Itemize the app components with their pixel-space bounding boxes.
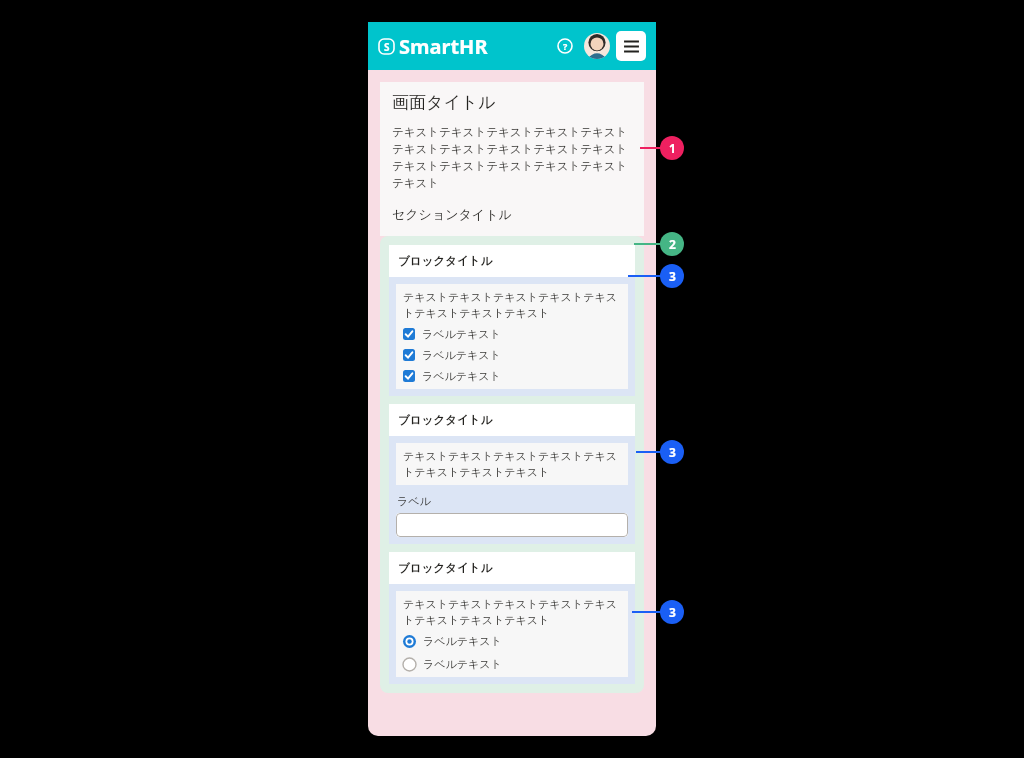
staticText: ラベルテキスト xyxy=(422,348,501,362)
button[interactable]: Annotation 3 xyxy=(660,600,684,624)
button[interactable]: Account xyxy=(584,33,610,59)
staticText: SmartHR xyxy=(399,33,488,60)
staticText: テキストテキストテキストテキストテキストテキストテキストテキスト xyxy=(403,449,621,479)
button[interactable]: Menu xyxy=(616,31,646,61)
staticText: 3 xyxy=(669,268,676,284)
staticText: 画面タイトル xyxy=(392,92,496,113)
button[interactable]: ラベルテキスト xyxy=(403,369,621,383)
staticText: テキストテキストテキストテキストテキストテキストテキストテキストテキストテキスト… xyxy=(392,125,632,190)
staticText: テキストテキストテキストテキストテキストテキストテキストテキスト xyxy=(403,290,621,320)
staticText: 3 xyxy=(669,604,676,620)
button[interactable] xyxy=(396,513,628,537)
staticText: ラベルテキスト xyxy=(422,369,501,383)
staticText: 1 xyxy=(669,140,676,156)
button[interactable]: Annotation 3 xyxy=(660,264,684,288)
staticText: ラベルテキスト xyxy=(423,657,502,671)
staticText: テキストテキストテキストテキストテキストテキストテキストテキスト xyxy=(403,597,621,627)
button[interactable]: ラベルテキスト xyxy=(403,634,621,648)
staticText: セクションタイトル xyxy=(392,206,512,222)
staticText: ラベル xyxy=(397,494,431,508)
staticText: ブロックタイトル xyxy=(398,413,493,427)
staticText: S xyxy=(384,40,390,54)
button[interactable]: Annotation 2 xyxy=(660,232,684,256)
staticText: 2 xyxy=(669,236,676,252)
button[interactable]: Annotation 3 xyxy=(660,440,684,464)
button[interactable]: Annotation 1 xyxy=(660,136,684,160)
button[interactable]: ラベルテキスト xyxy=(403,657,621,671)
staticText: ブロックタイトル xyxy=(398,254,493,268)
button[interactable]: ラベルテキスト xyxy=(403,327,621,341)
staticText: ブロックタイトル xyxy=(398,561,493,575)
staticText: 3 xyxy=(669,444,676,460)
staticText: ラベルテキスト xyxy=(422,327,501,341)
staticText: ラベルテキスト xyxy=(423,634,502,648)
button[interactable]: ラベルテキスト xyxy=(403,348,621,362)
staticText: ? xyxy=(563,40,568,52)
button[interactable]: Help xyxy=(552,33,578,59)
